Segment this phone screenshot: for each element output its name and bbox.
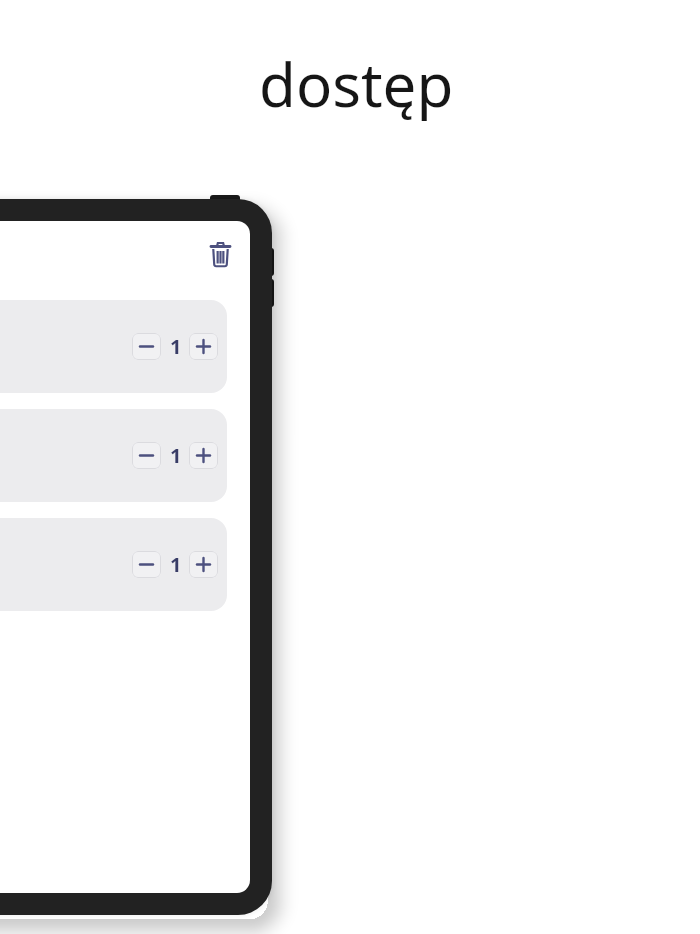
- button[interactable]: [132, 442, 161, 469]
- button[interactable]: [189, 551, 218, 578]
- staticText: 1: [170, 442, 180, 469]
- button[interactable]: 1: [0, 409, 227, 502]
- button[interactable]: 1: [0, 300, 227, 393]
- button[interactable]: [211, 242, 230, 267]
- staticText: 1: [170, 333, 180, 360]
- button[interactable]: [132, 551, 161, 578]
- button[interactable]: [189, 442, 218, 469]
- staticText: 1: [170, 551, 180, 578]
- staticText: dostęp: [259, 43, 454, 125]
- button[interactable]: [189, 333, 218, 360]
- button[interactable]: [132, 333, 161, 360]
- button[interactable]: 1: [0, 518, 227, 611]
